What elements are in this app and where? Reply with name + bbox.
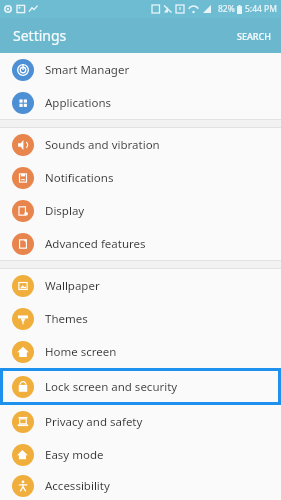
staticText: Notifications bbox=[45, 170, 114, 186]
staticText: Sounds and vibration bbox=[45, 137, 160, 153]
button[interactable]: Display bbox=[0, 194, 281, 227]
button[interactable]: Advanced features bbox=[0, 227, 281, 260]
staticText: Advanced features bbox=[45, 236, 146, 252]
staticText: SEARCH bbox=[237, 30, 271, 42]
staticText: Home screen bbox=[45, 344, 117, 360]
button[interactable]: Privacy and safety bbox=[0, 405, 281, 438]
staticText: Easy mode bbox=[45, 447, 104, 463]
button[interactable]: Easy mode bbox=[0, 438, 281, 471]
staticText: 82% bbox=[218, 3, 235, 15]
staticText: Themes bbox=[45, 311, 88, 327]
staticText: Settings bbox=[13, 26, 67, 45]
button[interactable]: Notifications bbox=[0, 161, 281, 194]
button[interactable]: Themes bbox=[0, 302, 281, 335]
button[interactable]: Applications bbox=[0, 86, 281, 119]
staticText: Smart Manager bbox=[45, 62, 130, 78]
staticText: Lock screen and security bbox=[45, 379, 178, 395]
button[interactable]: Accessibility bbox=[0, 471, 281, 500]
button[interactable]: Lock screen and security bbox=[0, 368, 281, 405]
button[interactable]: Home screen bbox=[0, 335, 281, 368]
staticText: 5:44 PM bbox=[245, 3, 277, 15]
staticText: Privacy and safety bbox=[45, 414, 143, 430]
button[interactable]: Wallpaper bbox=[0, 269, 281, 302]
button[interactable]: SEARCH bbox=[227, 24, 281, 48]
staticText: Display bbox=[45, 203, 85, 219]
staticText: Accessibility bbox=[45, 478, 110, 494]
button[interactable]: Smart Manager bbox=[0, 53, 281, 86]
button[interactable]: Sounds and vibration bbox=[0, 128, 281, 161]
staticText: Wallpaper bbox=[45, 278, 100, 294]
staticText: Applications bbox=[45, 95, 112, 111]
